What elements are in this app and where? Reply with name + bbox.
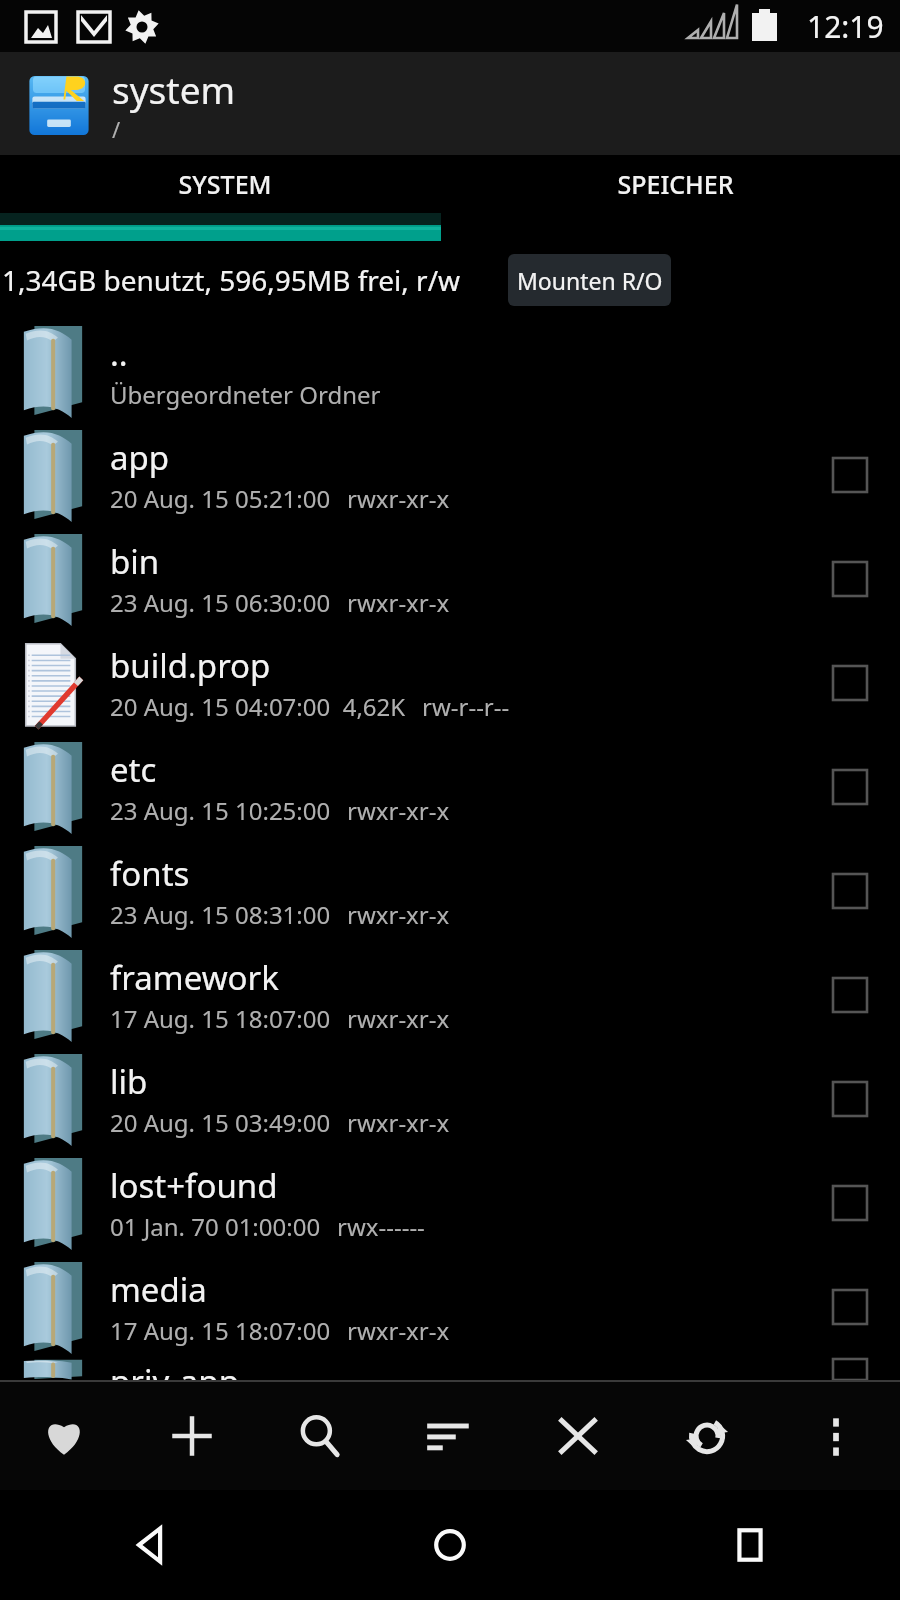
button[interactable]: lost+found (0, 1151, 900, 1255)
button[interactable]: Auswählen build.prop (820, 653, 880, 713)
button[interactable]: Suchen (256, 1382, 384, 1490)
button[interactable]: media (0, 1255, 900, 1359)
staticText: rwxr-xr-x (347, 586, 450, 619)
button[interactable]: priv-app (0, 1359, 900, 1380)
button[interactable]: SPEICHER (450, 155, 900, 213)
staticText: 20 Aug. 15 04:07:00 4,62K (110, 690, 406, 723)
staticText: lib (110, 1059, 148, 1104)
button[interactable]: framework (0, 943, 900, 1047)
staticText: rw-r--r-- (422, 690, 510, 723)
staticText: 23 Aug. 15 06:30:00 (110, 586, 331, 619)
button[interactable]: Auswählen etc (820, 757, 880, 817)
button[interactable]: Mehr (771, 1382, 900, 1490)
staticText: 23 Aug. 15 10:25:00 (110, 794, 331, 827)
button[interactable]: SYSTEM (0, 155, 450, 213)
button[interactable]: Auswählen lost+found (820, 1173, 880, 1233)
button[interactable]: Auswählen framework (820, 965, 880, 1025)
button[interactable]: Auswählen priv-app (820, 1359, 880, 1380)
staticText: system (112, 64, 236, 114)
button[interactable]: etc (0, 735, 900, 839)
staticText: rwxr-xr-x (347, 794, 450, 827)
staticText: priv-app (110, 1359, 239, 1380)
staticText: Mounten R/O (517, 265, 663, 296)
staticText: bin (110, 539, 160, 584)
button[interactable]: lib (0, 1047, 900, 1151)
staticText: etc (110, 747, 157, 792)
staticText: 23 Aug. 15 08:31:00 (110, 898, 331, 931)
staticText: app (110, 435, 170, 480)
button[interactable]: Auswählen bin (820, 549, 880, 609)
button[interactable]: Auswählen lib (820, 1069, 880, 1129)
staticText: rwxr-xr-x (347, 1314, 450, 1347)
staticText: 17 Aug. 15 18:07:00 (110, 1002, 331, 1035)
button[interactable]: fonts (0, 839, 900, 943)
staticText: build.prop (110, 643, 271, 688)
staticText: SPEICHER (617, 167, 734, 201)
button[interactable]: Auswählen media (820, 1277, 880, 1337)
staticText: 20 Aug. 15 03:49:00 (110, 1106, 331, 1139)
button[interactable]: .. (0, 319, 900, 423)
staticText: 12:19 (807, 6, 884, 47)
staticText: rwxr-xr-x (347, 482, 450, 515)
button[interactable]: Mounten R/O (508, 254, 671, 306)
button[interactable]: Startbildschirm (300, 1490, 600, 1600)
button[interactable]: Auswählen app (820, 445, 880, 505)
staticText: 17 Aug. 15 18:07:00 (110, 1314, 331, 1347)
staticText: SYSTEM (178, 167, 272, 201)
staticText: media (110, 1267, 207, 1312)
staticText: framework (110, 955, 279, 1000)
button[interactable]: Schließen (513, 1382, 642, 1490)
staticText: rwxr-xr-x (347, 1002, 450, 1035)
staticText: 1,34GB benutzt, 596,95MB frei, r/w (2, 261, 461, 299)
button[interactable]: build.prop (0, 631, 900, 735)
staticText: 20 Aug. 15 05:21:00 (110, 482, 331, 515)
button[interactable]: system (0, 52, 900, 155)
staticText: rwx------ (337, 1210, 425, 1243)
staticText: lost+found (110, 1163, 278, 1208)
button[interactable]: Sortieren (384, 1382, 513, 1490)
button[interactable]: Auswählen fonts (820, 861, 880, 921)
button[interactable]: app (0, 423, 900, 527)
staticText: fonts (110, 851, 190, 896)
button[interactable]: Übersicht (600, 1490, 900, 1600)
button[interactable]: bin (0, 527, 900, 631)
staticText: / (112, 114, 121, 144)
staticText: rwxr-xr-x (347, 1106, 450, 1139)
staticText: 01 Jan. 70 01:00:00 (110, 1210, 321, 1243)
staticText: Übergeordneter Ordner (110, 378, 381, 411)
staticText: rwxr-xr-x (347, 898, 450, 931)
button[interactable]: Neu (128, 1382, 256, 1490)
staticText: .. (110, 331, 128, 376)
button[interactable]: Favoriten (0, 1382, 128, 1490)
button[interactable]: Zurück (0, 1490, 300, 1600)
button[interactable]: Aktualisieren (642, 1382, 771, 1490)
